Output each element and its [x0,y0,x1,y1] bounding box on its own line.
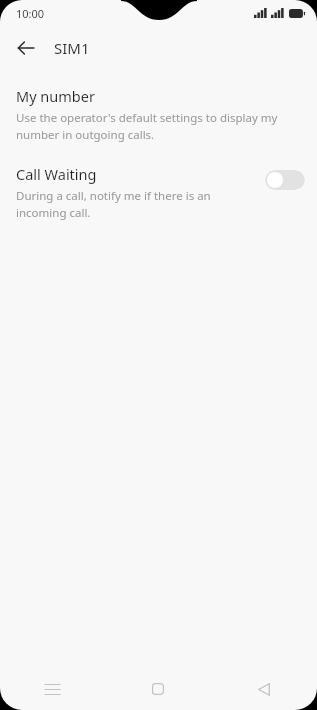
staticText: Call Waiting [16,164,97,184]
button[interactable]: Call Waiting [0,162,317,222]
button[interactable]: Recent apps [0,668,105,710]
staticText: Use the operator's default settings to d… [16,110,293,142]
button[interactable]: Home [105,668,211,710]
staticText: During a call, notify me if there is an … [16,188,257,220]
button[interactable]: My number [0,84,317,144]
button[interactable]: Back [8,30,44,66]
staticText: My number [16,86,95,106]
button[interactable]: Call Waiting toggle [265,170,305,190]
button[interactable]: Back [211,668,317,710]
staticText: 10:00 [16,6,45,21]
staticText: SIM1 [54,38,90,58]
